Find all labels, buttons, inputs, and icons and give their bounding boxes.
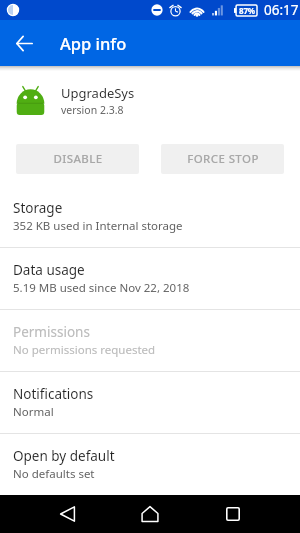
staticText: No permissions requested — [13, 342, 156, 358]
button[interactable]: Notifications — [0, 372, 300, 433]
button[interactable]: Navigate up — [0, 20, 48, 66]
staticText: 5.19 MB used since Nov 22, 2018 — [13, 280, 190, 296]
staticText: FORCE STOP — [187, 151, 259, 167]
staticText: No defaults set — [13, 466, 95, 482]
staticText: Normal — [13, 404, 54, 420]
staticText: 87% — [239, 5, 255, 16]
button[interactable]: Recent apps — [210, 495, 256, 533]
staticText: Storage — [13, 199, 63, 217]
staticText: 352 KB used in Internal storage — [13, 218, 183, 234]
button[interactable]: FORCE STOP — [161, 144, 284, 174]
button[interactable]: Permissions — [0, 310, 300, 371]
button[interactable]: Storage — [0, 186, 300, 247]
staticText: 06:17 — [264, 1, 299, 19]
staticText: version 2.3.8 — [61, 103, 124, 117]
staticText: Notifications — [13, 385, 94, 403]
button[interactable]: Open by default — [0, 434, 300, 495]
button[interactable]: Home — [127, 495, 173, 533]
staticText: Data usage — [13, 261, 85, 279]
button[interactable]: DISABLE — [16, 144, 139, 174]
staticText: UpgradeSys — [61, 84, 135, 102]
button[interactable]: Data usage — [0, 248, 300, 309]
staticText: Permissions — [13, 323, 90, 341]
staticText: App info — [60, 32, 127, 54]
staticText: Open by default — [13, 447, 115, 465]
staticText: DISABLE — [53, 151, 103, 167]
button[interactable]: Back — [44, 495, 90, 533]
